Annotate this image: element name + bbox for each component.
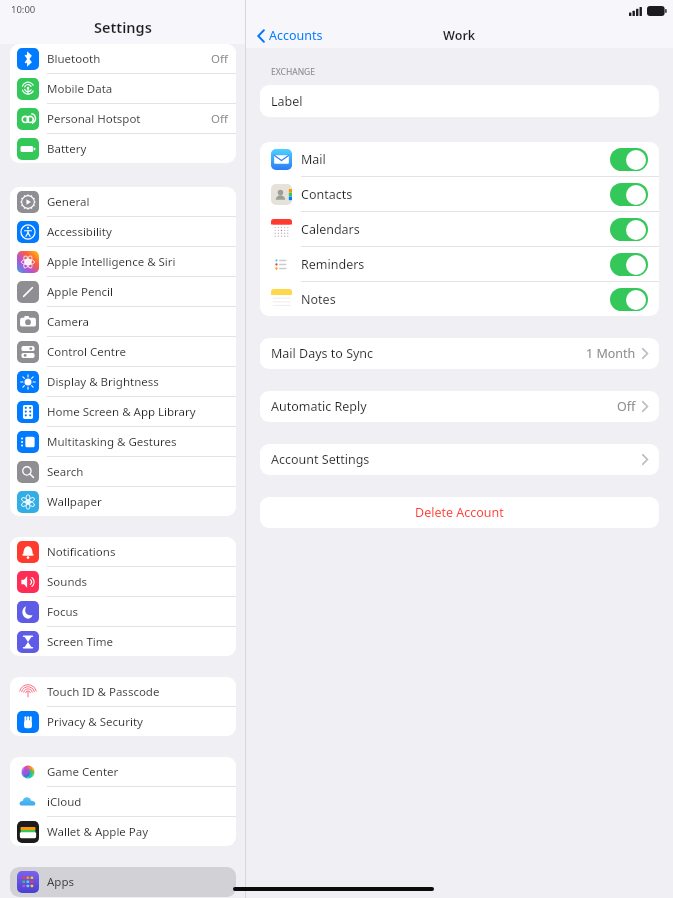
staticText: Reminders bbox=[301, 256, 365, 273]
button[interactable]: General bbox=[10, 187, 236, 217]
staticText: Calendars bbox=[301, 221, 360, 238]
staticText: Label bbox=[271, 93, 303, 110]
staticText: Off bbox=[211, 51, 228, 67]
button[interactable]: Automatic Reply bbox=[271, 391, 648, 422]
staticText: Accounts bbox=[269, 27, 323, 44]
button[interactable]: Notes bbox=[260, 282, 659, 316]
staticText: Display & Brightness bbox=[47, 374, 159, 390]
button[interactable]: Apple Intelligence & Siri bbox=[10, 247, 236, 277]
button[interactable]: Multitasking & Gestures bbox=[10, 427, 236, 457]
staticText: Mobile Data bbox=[47, 81, 113, 97]
button[interactable]: Label bbox=[271, 85, 648, 117]
staticText: Notifications bbox=[47, 544, 116, 560]
staticText: 1 Month bbox=[586, 345, 636, 362]
staticText: General bbox=[47, 194, 90, 210]
staticText: Apple Pencil bbox=[47, 284, 113, 300]
staticText: EXCHANGE bbox=[271, 66, 316, 78]
staticText: Delete Account bbox=[415, 504, 504, 521]
staticText: Automatic Reply bbox=[271, 398, 367, 415]
staticText: Multitasking & Gestures bbox=[47, 434, 177, 450]
staticText: Search bbox=[47, 464, 84, 480]
staticText: Apple Intelligence & Siri bbox=[47, 254, 176, 270]
staticText: Touch ID & Passcode bbox=[47, 684, 160, 700]
staticText: Notes bbox=[301, 291, 336, 308]
staticText: Screen Time bbox=[47, 634, 114, 650]
button[interactable]: Contacts on bbox=[610, 183, 648, 206]
staticText: Off bbox=[211, 111, 228, 127]
button[interactable]: Calendars on bbox=[610, 218, 648, 241]
staticText: 10:00 bbox=[11, 3, 36, 16]
button[interactable]: Game Center bbox=[10, 757, 236, 787]
staticText: Work bbox=[443, 27, 476, 44]
button[interactable]: Wallpaper bbox=[10, 487, 236, 516]
button[interactable]: Screen Time bbox=[10, 627, 236, 656]
button[interactable]: Apps bbox=[10, 867, 236, 897]
button[interactable]: Notifications bbox=[10, 537, 236, 567]
staticText: Account Settings bbox=[271, 451, 370, 468]
button[interactable]: Touch ID & Passcode bbox=[10, 677, 236, 707]
button[interactable]: Search bbox=[10, 457, 236, 487]
staticText: Control Centre bbox=[47, 344, 126, 360]
staticText: Off bbox=[617, 398, 636, 415]
button[interactable]: Control Centre bbox=[10, 337, 236, 367]
button[interactable]: Mail Days to Sync bbox=[271, 338, 648, 369]
button[interactable]: Display & Brightness bbox=[10, 367, 236, 397]
staticText: iCloud bbox=[47, 794, 82, 810]
button[interactable]: Home Screen & App Library bbox=[10, 397, 236, 427]
button[interactable]: Contacts bbox=[260, 177, 659, 212]
button[interactable]: Notes on bbox=[610, 288, 648, 311]
staticText: Mail bbox=[301, 151, 326, 168]
staticText: Game Center bbox=[47, 764, 119, 780]
staticText: Mail Days to Sync bbox=[271, 345, 374, 362]
button[interactable]: Wallet & Apple Pay bbox=[10, 817, 236, 846]
button[interactable]: Calendars bbox=[260, 212, 659, 247]
button[interactable]: Camera bbox=[10, 307, 236, 337]
button[interactable]: Mail bbox=[260, 142, 659, 177]
button[interactable]: Privacy & Security bbox=[10, 707, 236, 736]
button[interactable]: Reminders on bbox=[610, 253, 648, 276]
button[interactable]: Reminders bbox=[260, 247, 659, 282]
button[interactable]: Apple Pencil bbox=[10, 277, 236, 307]
button[interactable]: Mail on bbox=[610, 148, 648, 171]
staticText: Contacts bbox=[301, 186, 353, 203]
button[interactable]: Accessibility bbox=[10, 217, 236, 247]
button[interactable]: Focus bbox=[10, 597, 236, 627]
staticText: Personal Hotspot bbox=[47, 111, 141, 127]
staticText: Settings bbox=[94, 17, 152, 37]
button[interactable]: Personal Hotspot bbox=[10, 104, 236, 134]
staticText: Bluetooth bbox=[47, 51, 101, 67]
staticText: Focus bbox=[47, 604, 79, 620]
button[interactable]: iCloud bbox=[10, 787, 236, 817]
staticText: Sounds bbox=[47, 574, 88, 590]
button[interactable]: Accounts bbox=[257, 27, 323, 44]
staticText: Privacy & Security bbox=[47, 714, 143, 730]
button[interactable]: Mobile Data bbox=[10, 74, 236, 104]
button[interactable]: Delete Account bbox=[260, 497, 659, 528]
button[interactable]: Account Settings bbox=[271, 444, 648, 475]
staticText: Home Screen & App Library bbox=[47, 404, 196, 420]
staticText: Wallpaper bbox=[47, 494, 102, 510]
button[interactable]: Bluetooth bbox=[10, 44, 236, 74]
staticText: Wallet & Apple Pay bbox=[47, 824, 149, 840]
button[interactable]: Battery bbox=[10, 134, 236, 163]
staticText: Camera bbox=[47, 314, 89, 330]
button[interactable]: Sounds bbox=[10, 567, 236, 597]
staticText: Accessibility bbox=[47, 224, 112, 240]
staticText: Battery bbox=[47, 141, 87, 157]
staticText: Apps bbox=[47, 874, 75, 890]
